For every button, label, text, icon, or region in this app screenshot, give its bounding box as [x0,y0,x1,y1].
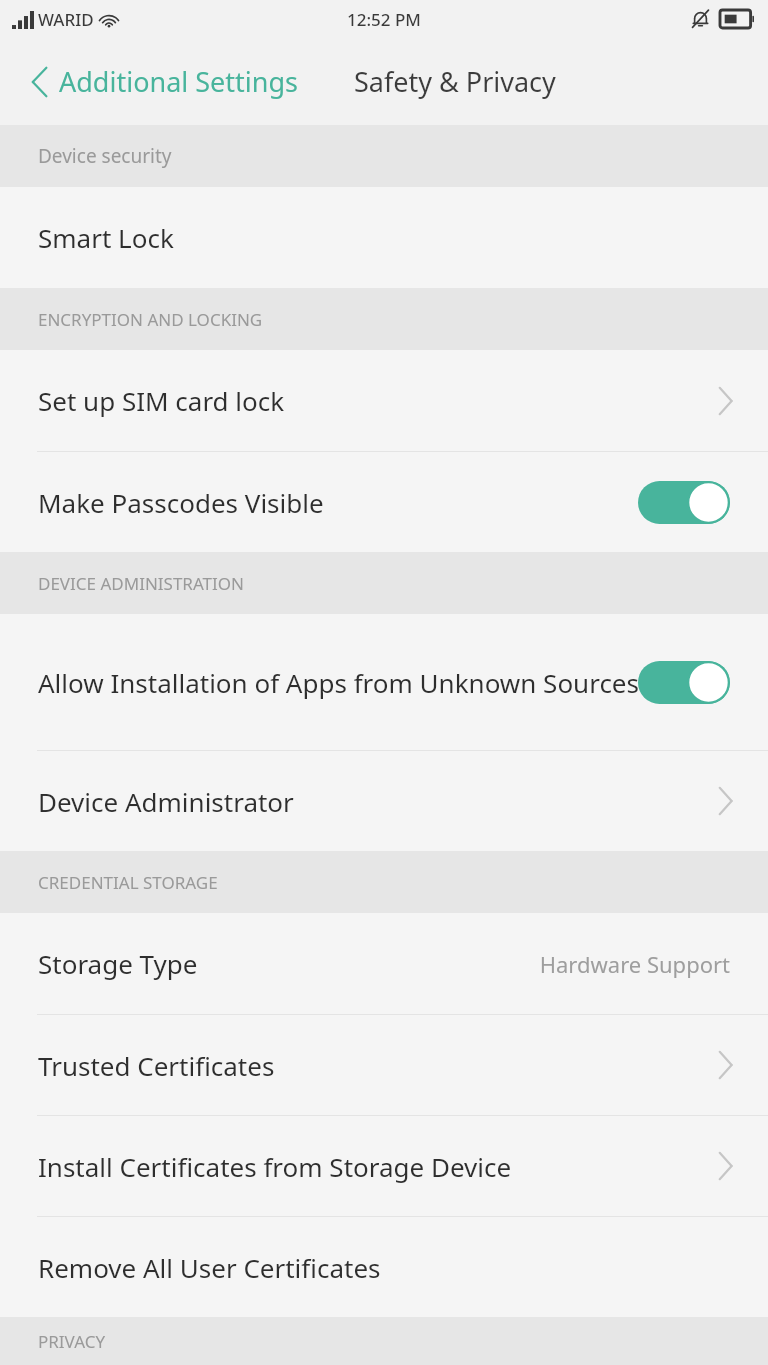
staticText: Hardware Support [539,949,730,979]
button[interactable]: Make Passcodes Visible [0,452,768,552]
staticText: PRIVACY [38,1330,106,1353]
staticText: CREDENTIAL STORAGE [38,871,218,894]
button[interactable]: Trusted Certificates [0,1015,768,1115]
button[interactable]: Toggle on [638,481,730,524]
staticText: DEVICE ADMINISTRATION [38,572,245,595]
button[interactable]: Toggle on [638,661,730,704]
button[interactable]: Set up SIM card lock [0,350,768,451]
staticText: Remove All User Certificates [38,1250,381,1285]
staticText: Smart Lock [38,220,174,255]
staticText: Safety & Privacy [354,63,556,100]
staticText: 12:52 PM [347,8,421,31]
button[interactable]: Smart Lock [0,187,768,288]
staticText: WARID [38,8,94,31]
staticText: ENCRYPTION AND LOCKING [38,308,263,331]
button[interactable]: Install Certificates from Storage Device [0,1116,768,1216]
staticText: Device security [38,143,172,169]
staticText: Install Certificates from Storage Device [38,1149,512,1184]
button[interactable]: Device Administrator [0,751,768,851]
other: Back [30,65,50,99]
staticText: Storage Type [38,946,198,981]
staticText: Allow Installation of Apps from Unknown … [38,665,639,700]
button[interactable]: Storage Type [0,913,768,1014]
staticText: Additional Settings [59,63,299,100]
staticText: Set up SIM card lock [38,383,285,418]
staticText: Trusted Certificates [38,1048,275,1083]
button[interactable]: Allow Installation of Apps from Unknown … [0,614,768,750]
staticText: Make Passcodes Visible [38,485,324,520]
button[interactable]: Back [30,63,305,100]
staticText: Device Administrator [38,784,294,819]
button[interactable]: Remove All User Certificates [0,1217,768,1317]
